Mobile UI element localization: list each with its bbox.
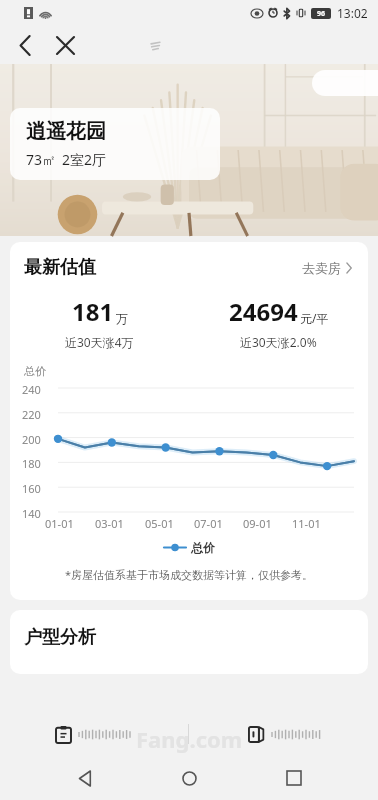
button[interactable]: 房源报告 xyxy=(0,726,188,743)
button[interactable]: 去卖房 xyxy=(300,257,354,279)
staticText: 180 xyxy=(22,456,41,468)
staticText: 近30天涨4万 xyxy=(65,334,134,350)
staticText: 24694 xyxy=(229,295,298,328)
button[interactable]: 在线开门 xyxy=(189,726,378,743)
staticText: 09-01 xyxy=(243,516,272,531)
staticText: 73㎡ xyxy=(26,150,57,169)
staticText: 元/平 xyxy=(300,310,329,326)
staticText: 最新估值 xyxy=(24,256,96,279)
staticText: 05-01 xyxy=(145,516,174,531)
staticText: 140 xyxy=(22,506,41,518)
staticText: 07-01 xyxy=(194,516,223,531)
staticText: 13:02 xyxy=(337,5,368,21)
staticText: 01-01 xyxy=(45,516,74,531)
staticText: 160 xyxy=(22,481,41,493)
staticText: *房屋估值系基于市场成交数据等计算，仅供参考。 xyxy=(65,567,314,582)
staticText: 去卖房 xyxy=(302,260,341,276)
button[interactable]: Recents xyxy=(274,758,314,798)
button[interactable]: Home xyxy=(169,758,209,798)
button[interactable]: Back xyxy=(8,28,42,62)
staticText: 96 xyxy=(317,9,326,19)
staticText: 逍遥花园 xyxy=(26,119,106,144)
button[interactable]: Close xyxy=(48,28,82,62)
staticText: 总价 xyxy=(24,364,46,378)
staticText: 2室2厅 xyxy=(62,150,107,169)
staticText: 03-01 xyxy=(95,516,124,531)
staticText: 200 xyxy=(22,432,41,444)
staticText: 总价 xyxy=(191,540,215,555)
staticText: 220 xyxy=(22,407,41,419)
staticText: 11-01 xyxy=(292,516,321,531)
staticText: Fang.com xyxy=(136,724,243,754)
button[interactable]: Back xyxy=(65,758,105,798)
staticText: 240 xyxy=(22,382,41,394)
button[interactable]: More xyxy=(312,70,378,96)
staticText: 户型分析 xyxy=(24,626,96,649)
staticText: 近30天涨2.0% xyxy=(240,334,317,350)
staticText: 181 xyxy=(72,295,114,328)
staticText: 万 xyxy=(116,311,128,326)
